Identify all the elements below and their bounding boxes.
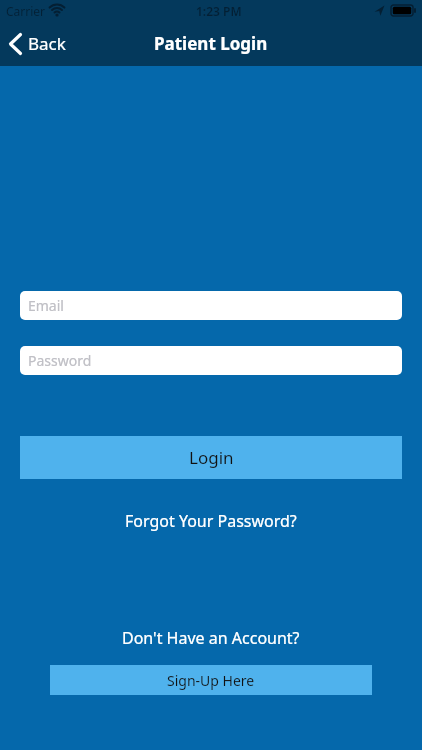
staticText: Carrier [6, 3, 46, 19]
staticText: Email [28, 296, 64, 315]
staticText: Password [28, 351, 92, 370]
button[interactable]: Login [20, 436, 402, 479]
button[interactable]: Sign-Up Here [50, 665, 372, 695]
staticText: Patient Login [154, 32, 268, 55]
button[interactable]: Forgot Your Password? [125, 510, 297, 532]
button[interactable]: Back [0, 32, 66, 55]
button[interactable]: Email [20, 291, 402, 320]
button[interactable]: Password [20, 346, 402, 375]
staticText: 1:23 PM [196, 3, 242, 19]
staticText: Sign-Up Here [167, 671, 255, 690]
staticText: Login [189, 446, 234, 469]
staticText: Don't Have an Account? [122, 627, 300, 649]
staticText: Back [28, 32, 66, 55]
staticText: Forgot Your Password? [125, 510, 297, 532]
